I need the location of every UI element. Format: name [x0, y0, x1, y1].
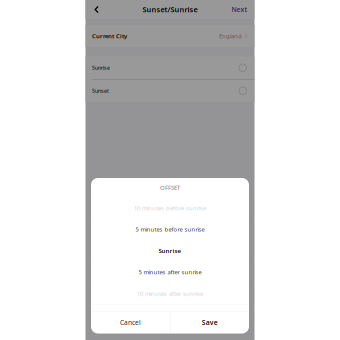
staticText: Sunrise — [92, 64, 110, 71]
button[interactable]: Sunset — [85, 79, 254, 102]
button[interactable]: 10 minutes before sunrise — [91, 197, 249, 218]
staticText: Next — [231, 5, 247, 14]
staticText: 5 minutes after sunrise — [138, 268, 201, 276]
button[interactable]: Sunrise — [91, 240, 249, 261]
button[interactable]: Current City — [85, 25, 254, 47]
button[interactable]: 10 minutes after sunrise — [91, 283, 249, 304]
staticText: Sunrise — [158, 247, 181, 255]
button[interactable]: Save — [170, 311, 249, 333]
button[interactable]: Cancel — [91, 311, 170, 333]
staticText: Cancel — [120, 318, 141, 327]
button[interactable]: Sunrise — [85, 56, 254, 79]
staticText: Sunset/Sunrise — [142, 4, 197, 14]
staticText: 10 minutes before sunrise — [134, 204, 206, 212]
button[interactable]: 5 minutes after sunrise — [91, 262, 249, 283]
staticText: Save — [202, 318, 218, 327]
staticText: Current City — [92, 32, 127, 40]
staticText: Sunset — [92, 87, 109, 94]
button[interactable]: 5 minutes before sunrise — [91, 219, 249, 240]
button[interactable]: Back — [85, 0, 108, 19]
staticText: 5 minutes before sunrise — [135, 225, 204, 233]
staticText: OFFSET — [160, 184, 180, 191]
staticText: 10 minutes after sunrise — [137, 290, 203, 297]
button[interactable]: Next — [231, 0, 254, 19]
staticText: England — [219, 32, 242, 40]
